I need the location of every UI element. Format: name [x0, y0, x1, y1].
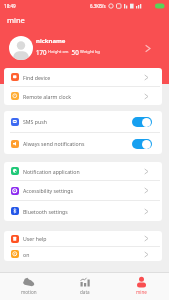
staticText: Remote alarm clock: [23, 93, 72, 100]
staticText: mine: [136, 289, 147, 295]
staticText: Find device: [23, 74, 51, 81]
button[interactable]: mine: [113, 273, 169, 300]
staticText: motion: [21, 289, 37, 295]
staticText: SMS push: [23, 118, 47, 125]
staticText: Height cm: [47, 49, 70, 55]
staticText: User help: [23, 235, 47, 242]
button[interactable]: motion: [0, 273, 57, 300]
button[interactable]: Accessibility settings: [4, 181, 162, 200]
staticText: 18:49: [4, 3, 16, 9]
button[interactable]: Notification application: [4, 162, 162, 180]
staticText: Notification application: [23, 168, 80, 175]
button[interactable]: Bluetooth settings: [4, 201, 162, 221]
staticText: data: [80, 289, 90, 295]
staticText: 170: [36, 48, 47, 56]
staticText: 6.3KB/s: [90, 3, 106, 9]
staticText: nickname: [36, 37, 66, 45]
staticText: Weight kg: [79, 49, 100, 55]
button[interactable]: Find device: [4, 68, 162, 86]
button[interactable]: on: [4, 247, 162, 261]
button[interactable]: nickname: [36, 37, 100, 56]
button[interactable]: Remote alarm clock: [4, 87, 162, 105]
button[interactable]: data: [57, 273, 113, 300]
button[interactable]: SMS push: [4, 111, 162, 132]
staticText: Always send notifications: [23, 140, 85, 147]
button[interactable]: Always send notifications: [4, 133, 162, 154]
staticText: 50: [70, 48, 79, 56]
button[interactable]: User help: [4, 231, 162, 246]
staticText: Bluetooth settings: [23, 208, 68, 215]
staticText: mine: [7, 15, 25, 25]
staticText: Accessibility settings: [23, 187, 73, 194]
staticText: on: [23, 251, 30, 258]
